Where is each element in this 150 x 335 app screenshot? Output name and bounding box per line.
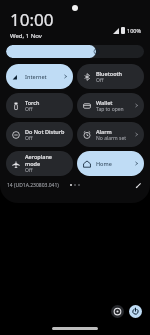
button[interactable]: Home (77, 151, 144, 176)
staticText: Off (25, 167, 33, 174)
button[interactable]: Settings (111, 305, 124, 318)
button[interactable]: Do Not Disturb (6, 122, 73, 147)
staticText: 100% (127, 27, 142, 34)
staticText: Internet (25, 73, 47, 80)
staticText: Aeroplane mode (25, 153, 68, 167)
button[interactable]: Aeroplane mode (6, 151, 73, 176)
staticText: Off (25, 135, 33, 142)
button[interactable]: Torch (6, 93, 73, 118)
staticText: Off (96, 77, 104, 84)
staticText: Off (25, 106, 33, 113)
button[interactable]: Internet (6, 64, 73, 89)
button[interactable]: Alarm (77, 122, 144, 147)
staticText: Wed, 1 Nov (10, 32, 42, 40)
staticText: No alarm set (96, 135, 127, 142)
staticText: Do Not Disturb (25, 128, 65, 135)
staticText: 10:00 (10, 8, 54, 31)
button[interactable]: Edit tiles (133, 180, 143, 190)
staticText: Bluetooth (96, 70, 123, 77)
staticText: Wallet (96, 99, 113, 106)
staticText: Tap to open (96, 106, 124, 113)
button[interactable]: Brightness (6, 45, 144, 58)
button[interactable]: Power (129, 305, 142, 318)
button[interactable]: Bluetooth (77, 64, 144, 89)
button[interactable]: Wallet (77, 93, 144, 118)
staticText: Torch (25, 99, 40, 106)
staticText: 14 (UD1A.230803.041) (7, 182, 59, 189)
staticText: Home (96, 160, 112, 167)
staticText: Alarm (96, 128, 112, 135)
